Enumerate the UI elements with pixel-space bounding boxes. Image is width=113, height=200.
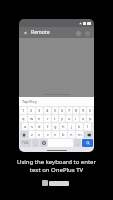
staticText: 6: [61, 108, 64, 113]
staticText: r: [47, 116, 49, 121]
button[interactable]: l: [84, 123, 91, 130]
button[interactable]: .: [74, 139, 81, 147]
staticText: Tap/Key: [22, 99, 37, 104]
staticText: b: [62, 132, 65, 137]
staticText: j: [71, 124, 73, 129]
staticText: w: [30, 116, 34, 121]
staticText: d: [38, 124, 41, 129]
button[interactable]: q: [20, 115, 27, 122]
button[interactable]: Back: [19, 19, 94, 152]
button[interactable]: p: [87, 115, 93, 122]
button[interactable]: ?123: [20, 139, 31, 147]
button[interactable]: globe: [40, 139, 47, 147]
staticText: 0: [89, 108, 92, 113]
button[interactable]: w: [28, 115, 35, 122]
button[interactable]: a: [22, 123, 28, 130]
button[interactable]: f: [44, 123, 51, 130]
staticText: f: [47, 124, 49, 129]
staticText: ,: [35, 141, 37, 146]
button[interactable]: backspace: [84, 131, 93, 138]
staticText: q: [22, 116, 25, 121]
staticText: 5: [54, 108, 57, 113]
staticText: t: [54, 116, 56, 121]
button[interactable]: y: [59, 115, 65, 122]
button[interactable]: 3: [36, 107, 43, 114]
button[interactable]: More options: [83, 29, 91, 37]
staticText: a: [24, 124, 27, 129]
button[interactable]: 0: [87, 107, 93, 114]
staticText: e: [38, 116, 41, 121]
staticText: 1: [22, 108, 25, 113]
staticText: p: [89, 116, 92, 121]
button[interactable]: 5: [52, 107, 58, 114]
staticText: 8: [75, 108, 78, 113]
button[interactable]: n: [68, 131, 75, 138]
staticText: 9: [82, 108, 85, 113]
staticText: Remote: [31, 29, 50, 36]
button[interactable]: shift: [20, 131, 28, 138]
button[interactable]: v: [52, 131, 59, 138]
staticText: 3: [38, 108, 41, 113]
button[interactable]: u: [66, 115, 72, 122]
staticText: c: [47, 132, 49, 137]
staticText: ?123: [22, 141, 29, 145]
button[interactable]: Back: [22, 29, 29, 36]
button[interactable]: g: [52, 123, 59, 130]
staticText: v: [54, 132, 57, 137]
staticText: z: [31, 132, 33, 137]
button[interactable]: search: [82, 139, 93, 147]
staticText: .: [77, 141, 79, 146]
button[interactable]: r: [44, 115, 51, 122]
staticText: Using the keyboard to enter text on OneP…: [17, 158, 96, 174]
button[interactable]: App badge: [42, 180, 69, 186]
button[interactable]: 6: [59, 107, 65, 114]
button[interactable]: s: [29, 123, 35, 130]
button[interactable]: Keyboard: [74, 29, 82, 37]
button[interactable]: 8: [73, 107, 79, 114]
button[interactable]: z: [29, 131, 35, 138]
staticText: 4: [46, 108, 49, 113]
button[interactable]: k: [76, 123, 83, 130]
button[interactable]: e: [36, 115, 43, 122]
button[interactable]: b: [60, 131, 67, 138]
staticText: k: [78, 124, 81, 129]
staticText: n: [70, 132, 73, 137]
button[interactable]: i: [73, 115, 79, 122]
button[interactable]: j: [68, 123, 75, 130]
staticText: y: [61, 116, 64, 121]
button[interactable]: h: [60, 123, 67, 130]
button[interactable]: ,: [32, 139, 39, 147]
button[interactable]: 9: [80, 107, 86, 114]
button[interactable]: 4: [44, 107, 51, 114]
staticText: o: [82, 116, 85, 121]
button[interactable]: c: [44, 131, 51, 138]
staticText: x: [38, 132, 41, 137]
button[interactable]: 2: [28, 107, 35, 114]
button[interactable]: Tap/Key: [19, 97, 94, 106]
staticText: u: [68, 116, 71, 121]
staticText: 7: [68, 108, 71, 113]
staticText: h: [62, 124, 65, 129]
button[interactable]: 7: [66, 107, 72, 114]
staticText: i: [75, 116, 77, 121]
button[interactable]: m: [76, 131, 83, 138]
staticText: s: [31, 124, 33, 129]
button[interactable]: x: [36, 131, 43, 138]
button[interactable]: 1: [20, 107, 27, 114]
staticText: 2: [30, 108, 33, 113]
button[interactable]: d: [36, 123, 43, 130]
staticText: m: [78, 132, 82, 137]
button[interactable]: o: [80, 115, 86, 122]
staticText: l: [87, 124, 89, 129]
button[interactable]: t: [52, 115, 58, 122]
staticText: g: [54, 124, 57, 129]
